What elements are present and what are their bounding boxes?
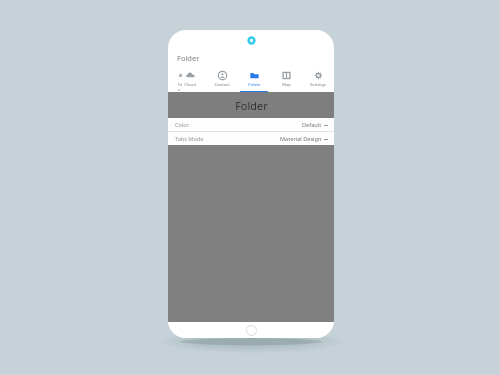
button[interactable]: Folder <box>238 68 270 92</box>
staticText: Material Design <box>280 135 322 143</box>
staticText: Color <box>175 121 190 129</box>
button[interactable]: Map <box>270 68 302 92</box>
staticText: Tabs Mode <box>175 135 204 143</box>
staticText: Folder <box>235 98 268 113</box>
staticText: Contact <box>214 82 230 88</box>
staticText: Folder <box>177 53 200 63</box>
other: Home <box>246 325 257 336</box>
button[interactable]: Settings <box>302 68 334 92</box>
button[interactable]: Color <box>168 118 334 131</box>
button[interactable]: Tabs Mode <box>168 132 334 145</box>
staticText: Map <box>282 82 291 88</box>
button[interactable]: Cloud <box>173 68 206 92</box>
staticText: Fav <box>178 82 183 92</box>
staticText: Default <box>302 121 322 129</box>
staticText: Cloud <box>184 82 196 88</box>
staticText: Folder <box>248 82 261 88</box>
staticText: Settings <box>310 82 326 88</box>
button[interactable]: Contact <box>206 68 238 92</box>
